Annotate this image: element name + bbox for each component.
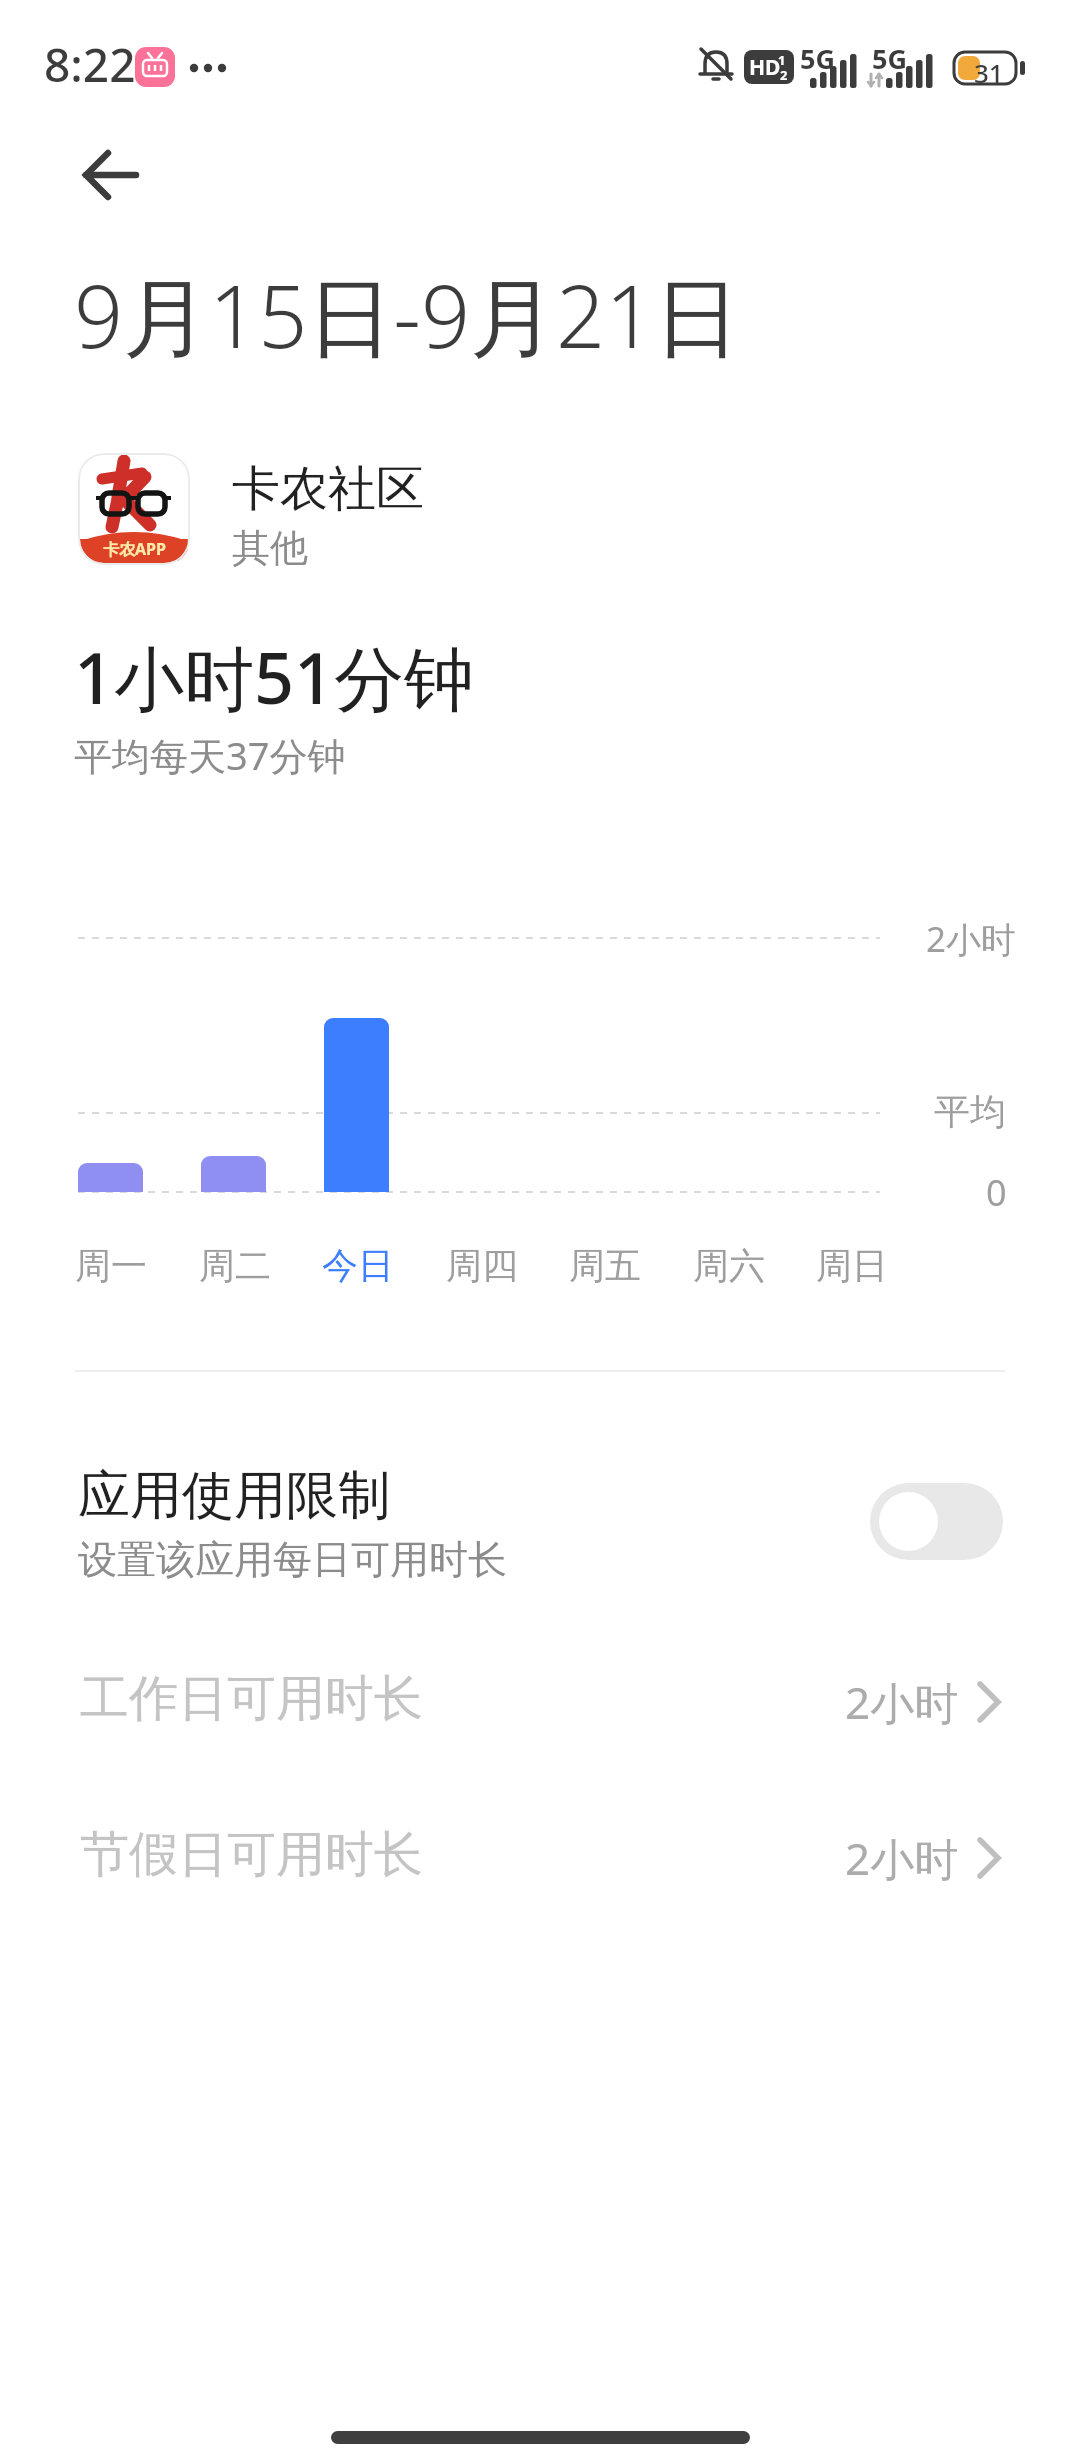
staticText: 2小时: [926, 915, 1017, 963]
staticText: 1: [778, 51, 786, 69]
button[interactable]: 卡农APP: [78, 453, 190, 565]
staticText: 2小时: [845, 1828, 959, 1888]
staticText: 5G: [800, 40, 835, 77]
staticText: 2: [780, 66, 788, 84]
button[interactable]: 周四: [421, 1240, 543, 1290]
staticText: 卡农APP: [103, 538, 166, 560]
staticText: 2小时: [845, 1672, 959, 1732]
staticText: 9月15日-9月21日: [74, 256, 741, 373]
button[interactable]: 工作日可用时长: [60, 1662, 1020, 1742]
button[interactable]: 周一: [50, 1240, 172, 1290]
staticText: 今日: [322, 1243, 394, 1288]
button[interactable]: 今日: [297, 1240, 419, 1290]
staticText: 节假日可用时长: [80, 1824, 423, 1886]
staticText: 周一: [75, 1243, 147, 1288]
button[interactable]: 周二: [174, 1240, 296, 1290]
staticText: 8:22: [44, 33, 136, 96]
button[interactable]: [870, 1483, 1003, 1560]
staticText: 设置该应用每日可用时长: [78, 1535, 507, 1584]
staticText: 卡农社区: [232, 459, 424, 519]
button[interactable]: 周日: [791, 1240, 913, 1290]
staticText: HD: [749, 53, 781, 82]
staticText: 周六: [693, 1243, 765, 1288]
button[interactable]: [72, 142, 148, 208]
staticText: 1小时51分钟: [74, 629, 475, 725]
staticText: 周五: [569, 1243, 641, 1288]
staticText: 周日: [816, 1243, 888, 1288]
button[interactable]: 周六: [668, 1240, 790, 1290]
staticText: 周二: [199, 1243, 271, 1288]
staticText: 其他: [232, 524, 308, 572]
button[interactable]: 周五: [544, 1240, 666, 1290]
staticText: 工作日可用时长: [80, 1668, 423, 1730]
staticText: 31: [974, 55, 1004, 90]
staticText: 0: [986, 1168, 1007, 1217]
staticText: 应用使用限制: [78, 1463, 390, 1529]
staticText: 周四: [446, 1243, 518, 1288]
staticText: 平均: [934, 1089, 1006, 1134]
staticText: 平均每天37分钟: [74, 729, 346, 781]
button[interactable]: 节假日可用时长: [60, 1818, 1020, 1898]
staticText: 5G: [872, 40, 907, 77]
